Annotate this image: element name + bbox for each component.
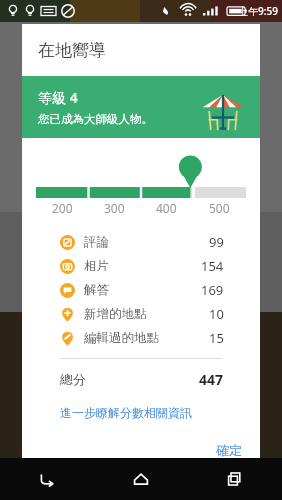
- button[interactable]: 解答: [22, 278, 260, 302]
- staticText: 上午9:59: [238, 4, 278, 18]
- button[interactable]: 確定: [198, 436, 260, 464]
- staticText: 您已成為大師級人物。: [38, 112, 153, 126]
- button[interactable]: 相片: [22, 254, 260, 278]
- button[interactable]: Recent apps: [188, 458, 282, 500]
- button[interactable]: Home: [94, 458, 188, 500]
- staticText: 等級 4: [38, 88, 78, 107]
- button[interactable]: 進一步瞭解分數相關資訊: [60, 405, 192, 420]
- button[interactable]: 編輯過的地點: [22, 326, 260, 350]
- staticText: 200: [52, 200, 73, 216]
- staticText: 確定: [216, 442, 242, 458]
- staticText: 總分: [60, 371, 86, 387]
- staticText: 評論: [84, 234, 109, 250]
- staticText: 新增的地點: [84, 306, 147, 322]
- staticText: 169: [201, 281, 224, 299]
- staticText: 解答: [84, 282, 109, 298]
- staticText: 相片: [84, 258, 109, 274]
- staticText: 99: [209, 233, 224, 251]
- staticText: 400: [156, 200, 177, 216]
- staticText: 154: [201, 257, 224, 275]
- staticText: 編輯過的地點: [84, 330, 159, 346]
- staticText: 500: [209, 200, 230, 216]
- staticText: 在地嚮導: [38, 40, 106, 61]
- button[interactable]: Back: [0, 458, 94, 500]
- button[interactable]: 評論: [22, 230, 260, 254]
- staticText: 447: [199, 370, 224, 389]
- button[interactable]: 新增的地點: [22, 302, 260, 326]
- staticText: 300: [104, 200, 125, 216]
- staticText: 15: [209, 329, 224, 347]
- staticText: 進一步瞭解分數相關資訊: [60, 405, 192, 420]
- staticText: 10: [209, 305, 224, 323]
